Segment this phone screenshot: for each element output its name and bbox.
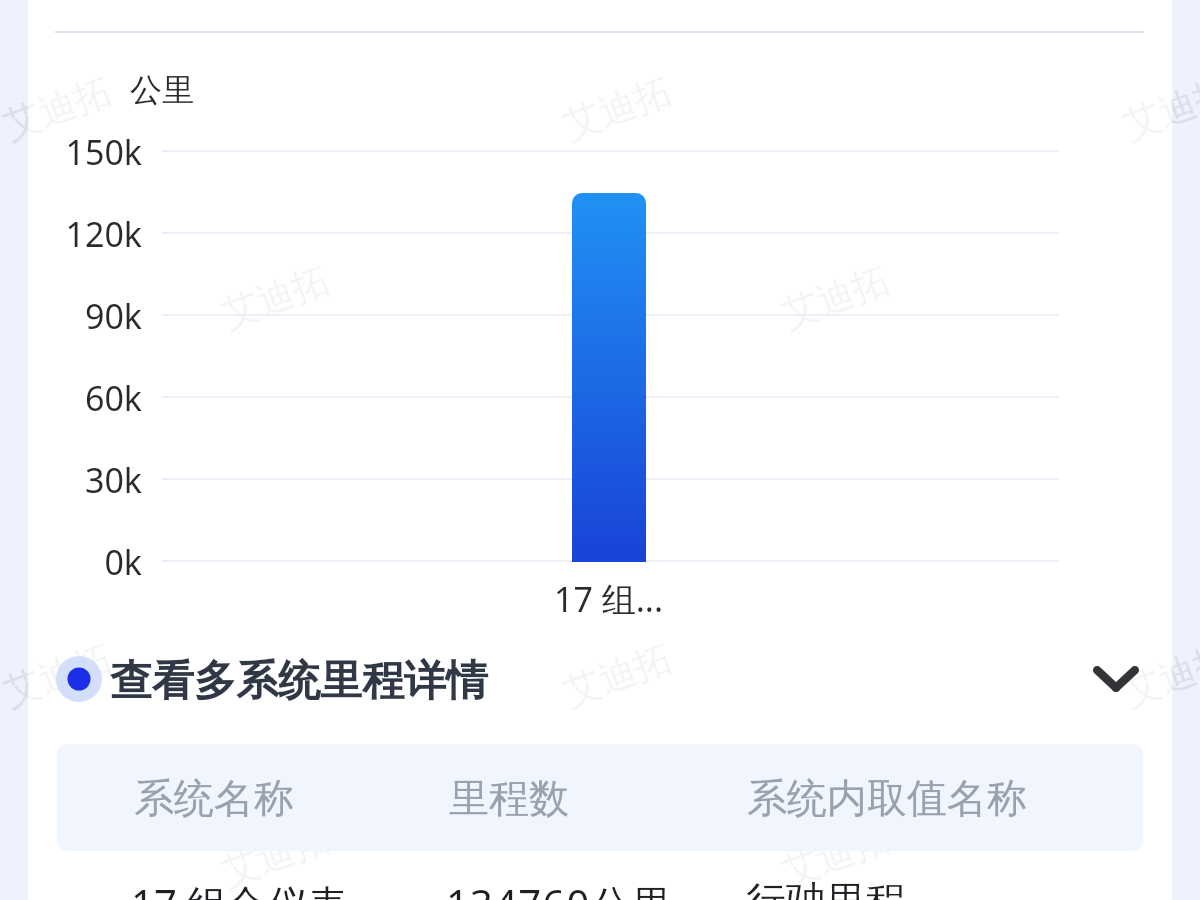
- staticText: 里程数: [449, 773, 569, 823]
- staticText: 134760公里: [446, 876, 673, 900]
- staticText: 行驶里程: [746, 876, 906, 900]
- button[interactable]: 17 组合仪表: [28, 852, 1172, 900]
- staticText: 艾迪拓: [0, 634, 118, 716]
- staticText: 艾迪拓: [215, 814, 336, 896]
- staticText: 艾迪拓: [557, 67, 678, 149]
- staticText: 17 组合仪表: [131, 876, 348, 900]
- staticText: 系统名称: [134, 773, 294, 823]
- button[interactable]: Collapse: [1080, 643, 1152, 715]
- staticText: 艾迪拓: [775, 814, 896, 896]
- staticText: 公里: [130, 70, 194, 110]
- staticText: 0k: [104, 539, 142, 585]
- staticText: 艾迪拓: [557, 67, 678, 149]
- staticText: 系统内取值名称: [747, 773, 1027, 823]
- staticText: 艾迪拓: [0, 67, 118, 149]
- staticText: 艾迪拓: [0, 634, 118, 716]
- staticText: 艾迪拓: [215, 256, 336, 338]
- staticText: 艾迪拓: [1117, 67, 1200, 149]
- staticText: 艾迪拓: [0, 67, 118, 149]
- staticText: 艾迪拓: [1117, 634, 1200, 716]
- staticText: 艾迪拓: [215, 814, 336, 896]
- staticText: 17 组...: [554, 576, 664, 622]
- staticText: 60k: [84, 375, 142, 421]
- staticText: 查看多系统里程详情: [110, 655, 488, 708]
- staticText: 艾迪拓: [775, 256, 896, 338]
- button[interactable]: 17 组合仪表 134760 公里: [572, 193, 646, 562]
- staticText: 艾迪拓: [557, 634, 678, 716]
- staticText: 艾迪拓: [775, 256, 896, 338]
- staticText: 30k: [84, 457, 142, 503]
- staticText: 艾迪拓: [1117, 67, 1200, 149]
- button[interactable]: 查看多系统里程详情: [28, 639, 1172, 719]
- staticText: 艾迪拓: [215, 256, 336, 338]
- staticText: 120k: [65, 211, 142, 257]
- staticText: 艾迪拓: [775, 814, 896, 896]
- staticText: 90k: [84, 293, 142, 339]
- staticText: 艾迪拓: [557, 634, 678, 716]
- staticText: 150k: [65, 129, 142, 175]
- staticText: 艾迪拓: [1117, 634, 1200, 716]
